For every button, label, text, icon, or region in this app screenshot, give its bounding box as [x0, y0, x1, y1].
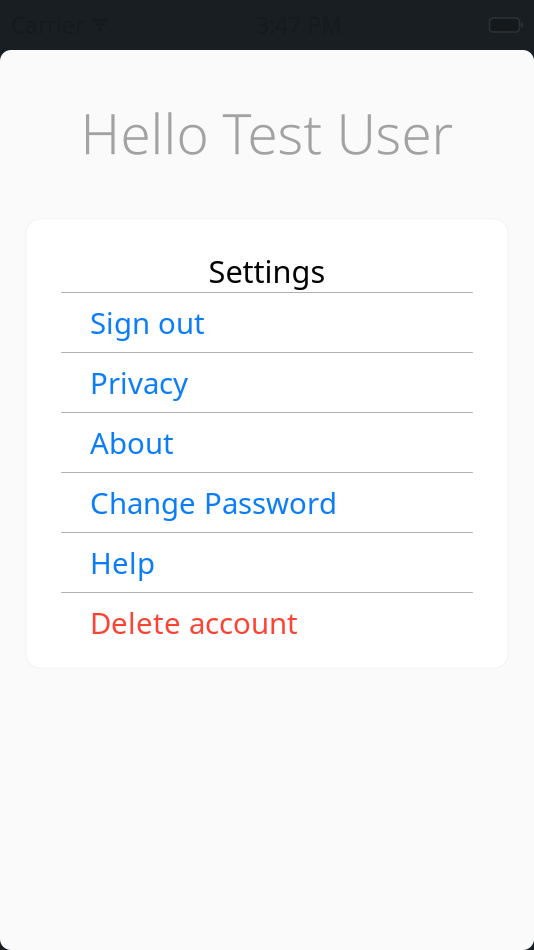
button[interactable]: Change Password — [26, 473, 508, 532]
staticText: Privacy — [90, 363, 188, 402]
button[interactable]: Privacy — [26, 353, 508, 412]
staticText: Settings — [208, 251, 325, 291]
button[interactable]: Sign out — [26, 293, 508, 352]
button[interactable]: About — [26, 413, 508, 472]
staticText: Delete account — [90, 603, 298, 642]
staticText: Sign out — [90, 303, 205, 342]
staticText: About — [90, 423, 174, 462]
button[interactable]: Delete account — [26, 593, 508, 652]
staticText: Help — [90, 543, 155, 582]
button[interactable]: Help — [26, 533, 508, 592]
staticText: Hello Test User — [80, 97, 453, 169]
staticText: Change Password — [90, 483, 337, 522]
